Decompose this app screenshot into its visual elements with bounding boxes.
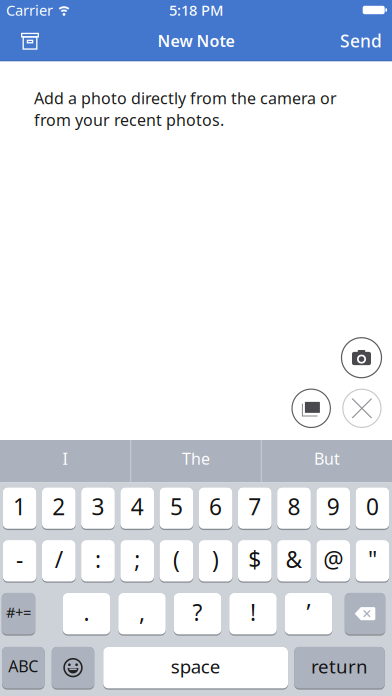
button[interactable]: #+= bbox=[2, 593, 35, 636]
button[interactable]: ; bbox=[120, 540, 154, 583]
button[interactable]: 1 bbox=[3, 487, 36, 530]
button[interactable]: 0 bbox=[355, 487, 389, 530]
staticText: 0 bbox=[366, 491, 379, 522]
staticText: $ bbox=[248, 544, 261, 574]
button[interactable]: . bbox=[63, 593, 110, 636]
button[interactable]: I bbox=[0, 440, 130, 482]
staticText: ABC bbox=[8, 655, 38, 677]
button[interactable]: " bbox=[355, 540, 389, 583]
button[interactable] bbox=[52, 647, 94, 690]
staticText: 5:18 PM bbox=[169, 0, 223, 20]
staticText: 5 bbox=[170, 491, 183, 522]
staticText: ) bbox=[212, 544, 219, 574]
staticText: ’ bbox=[306, 597, 310, 627]
button[interactable]: 8 bbox=[277, 487, 311, 530]
staticText: 8 bbox=[287, 491, 300, 522]
staticText: from your recent photos. bbox=[34, 109, 224, 130]
button[interactable]: , bbox=[118, 593, 166, 636]
button[interactable]: - bbox=[3, 540, 36, 583]
staticText: Send bbox=[340, 29, 382, 52]
staticText: " bbox=[368, 544, 377, 574]
staticText: I bbox=[63, 448, 68, 469]
staticText: @ bbox=[323, 544, 343, 574]
staticText: . bbox=[83, 597, 89, 627]
button[interactable]: ( bbox=[160, 540, 193, 583]
button[interactable]: & bbox=[277, 540, 311, 583]
button[interactable] bbox=[341, 337, 382, 378]
staticText: ( bbox=[173, 544, 180, 574]
staticText: return bbox=[311, 654, 368, 679]
staticText: & bbox=[285, 544, 302, 574]
staticText: 1 bbox=[13, 491, 26, 522]
staticText: 7 bbox=[248, 491, 261, 522]
button[interactable]: 2 bbox=[42, 487, 76, 530]
button[interactable] bbox=[291, 389, 331, 428]
button[interactable]: 9 bbox=[316, 487, 350, 530]
button[interactable]: ? bbox=[174, 593, 221, 636]
button[interactable]: / bbox=[42, 540, 76, 583]
staticText: Add a photo directly from the camera or bbox=[34, 87, 337, 109]
staticText: 3 bbox=[91, 491, 104, 522]
button[interactable]: return bbox=[294, 647, 385, 690]
button[interactable]: space bbox=[103, 647, 288, 690]
staticText: space bbox=[171, 654, 221, 679]
button[interactable]: 5 bbox=[160, 487, 193, 530]
button[interactable]: 7 bbox=[238, 487, 272, 530]
staticText: : bbox=[95, 544, 101, 574]
staticText: 2 bbox=[52, 491, 65, 522]
button[interactable]: ) bbox=[199, 540, 232, 583]
button[interactable]: : bbox=[81, 540, 115, 583]
button[interactable]: But bbox=[262, 440, 392, 482]
staticText: New Note bbox=[157, 30, 234, 51]
staticText: Carrier bbox=[6, 0, 53, 20]
staticText: ? bbox=[192, 597, 202, 627]
button[interactable] bbox=[345, 593, 385, 636]
staticText: / bbox=[55, 544, 63, 574]
staticText: ! bbox=[250, 597, 256, 627]
staticText: But bbox=[314, 448, 340, 469]
button[interactable]: $ bbox=[238, 540, 272, 583]
staticText: 4 bbox=[131, 491, 144, 522]
staticText: #+= bbox=[6, 602, 31, 622]
button[interactable] bbox=[342, 389, 381, 428]
button[interactable]: ’ bbox=[285, 593, 332, 636]
staticText: The bbox=[182, 448, 210, 469]
button[interactable]: Send bbox=[340, 29, 392, 52]
button[interactable]: 6 bbox=[199, 487, 232, 530]
button[interactable] bbox=[0, 32, 39, 50]
staticText: 9 bbox=[327, 491, 340, 522]
staticText: - bbox=[16, 544, 23, 574]
button[interactable]: 4 bbox=[120, 487, 154, 530]
staticText: ; bbox=[134, 544, 140, 574]
staticText: 6 bbox=[209, 491, 222, 522]
button[interactable]: 3 bbox=[81, 487, 115, 530]
staticText: , bbox=[139, 597, 145, 627]
button[interactable]: @ bbox=[316, 540, 350, 583]
button[interactable]: The bbox=[131, 440, 261, 482]
button[interactable]: ABC bbox=[2, 647, 44, 690]
button[interactable]: ! bbox=[229, 593, 277, 636]
